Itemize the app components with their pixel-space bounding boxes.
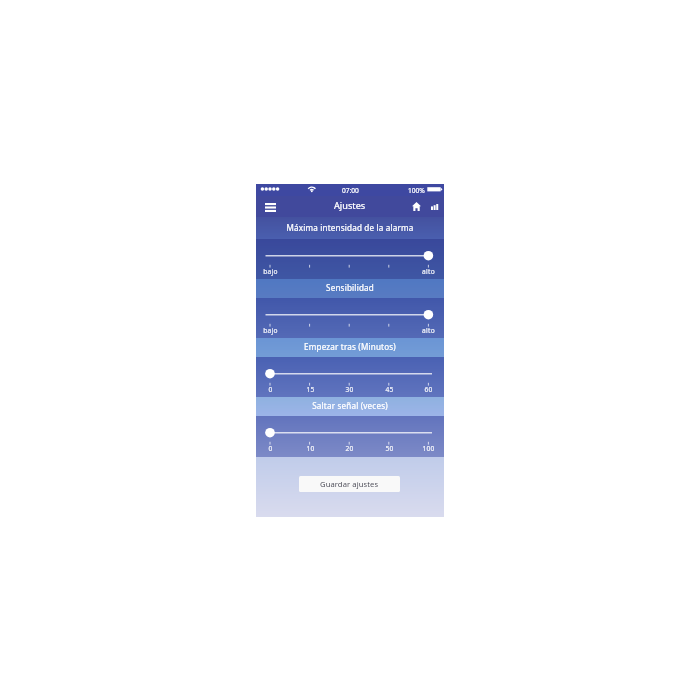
staticText: 50 — [385, 444, 394, 453]
button[interactable]: Home — [409, 199, 423, 213]
staticText: 0 — [268, 385, 273, 394]
staticText: 0 — [268, 444, 273, 453]
button[interactable]: Máxima intensidad de la alarma — [256, 217, 444, 239]
staticText: 07:00 — [342, 186, 359, 195]
staticText: 15 — [306, 385, 315, 394]
button[interactable]: Empezar tras (Minutos) — [256, 338, 444, 357]
staticText: Máxima intensidad de la alarma — [286, 222, 414, 233]
staticText: bajo — [263, 267, 278, 276]
staticText: Guardar ajustes — [320, 479, 379, 489]
button[interactable]: Saltar señal (veces) — [256, 397, 444, 416]
button[interactable]: Statistics — [427, 200, 441, 214]
staticText: 10 — [306, 444, 315, 453]
staticText: 30 — [345, 385, 354, 394]
staticText: alto — [422, 267, 435, 276]
staticText: bajo — [263, 326, 278, 335]
staticText: Ajustes — [334, 199, 366, 212]
button[interactable]: Menu — [262, 199, 278, 215]
staticText: 100 — [422, 444, 435, 453]
staticText: alto — [422, 326, 435, 335]
staticText: Sensibilidad — [326, 282, 374, 293]
staticText: Saltar señal (veces) — [312, 400, 388, 411]
staticText: 60 — [424, 385, 433, 394]
button[interactable]: 0 — [256, 416, 444, 457]
button[interactable]: bajo — [256, 239, 444, 279]
button[interactable]: 0 — [256, 357, 444, 397]
button[interactable]: bajo — [256, 298, 444, 338]
button[interactable]: Guardar ajustes — [299, 476, 400, 492]
staticText: Empezar tras (Minutos) — [304, 341, 396, 352]
staticText: 20 — [345, 444, 354, 453]
staticText: 100% — [408, 186, 425, 195]
staticText: 45 — [385, 385, 394, 394]
button[interactable]: Sensibilidad — [256, 279, 444, 298]
